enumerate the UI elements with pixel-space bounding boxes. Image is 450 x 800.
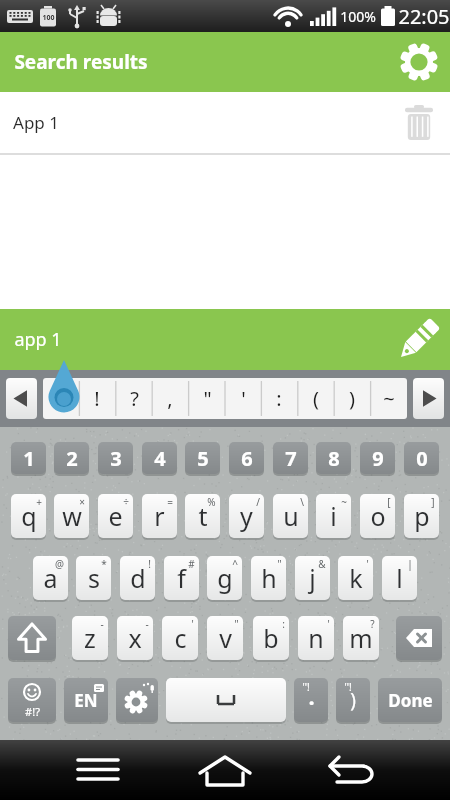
button[interactable]: p	[404, 494, 439, 538]
button[interactable]: f	[164, 556, 199, 600]
button[interactable]	[8, 616, 56, 660]
button[interactable]: r	[142, 494, 177, 538]
staticText: y	[240, 499, 253, 533]
button[interactable]	[413, 378, 444, 419]
button[interactable]: z	[72, 616, 108, 660]
button[interactable]: app 1	[0, 309, 450, 370]
button[interactable]: App 1	[0, 92, 450, 153]
staticText: ]	[431, 495, 435, 509]
button[interactable]: EN	[64, 678, 108, 722]
button[interactable]: t	[185, 494, 220, 538]
button[interactable]: ?	[116, 378, 152, 419]
button[interactable]: ~	[371, 378, 407, 419]
button[interactable]: l	[382, 556, 417, 600]
button[interactable]: o	[360, 494, 395, 538]
staticText: =	[167, 495, 173, 509]
button[interactable]: g	[207, 556, 242, 600]
button[interactable]: s	[76, 556, 111, 600]
staticText: '	[366, 557, 369, 571]
button[interactable]: q	[11, 494, 46, 538]
button[interactable]: 0	[404, 442, 439, 474]
staticText: [	[387, 495, 391, 509]
staticText: 7	[285, 445, 297, 472]
button[interactable]: ,	[152, 378, 188, 419]
staticText: ~	[341, 495, 347, 509]
staticText: Done	[388, 689, 433, 712]
button[interactable]: h	[251, 556, 286, 600]
staticText: !	[148, 557, 151, 571]
button[interactable]: x	[117, 616, 153, 660]
staticText: n	[308, 621, 324, 655]
button[interactable]	[63, 740, 133, 800]
staticText: g	[217, 561, 233, 595]
button[interactable]: k	[338, 556, 373, 600]
staticText: q	[21, 499, 37, 533]
staticText: j	[309, 561, 316, 595]
staticText: p	[414, 499, 430, 533]
staticText: '	[191, 617, 194, 631]
button[interactable]	[396, 616, 442, 660]
button[interactable]	[116, 678, 158, 722]
button[interactable]: !	[79, 378, 115, 419]
button[interactable]: c	[162, 616, 198, 660]
button[interactable]: Search results	[0, 32, 450, 92]
staticText: +	[36, 495, 42, 509]
button[interactable]: ''!	[294, 678, 328, 722]
staticText: 22:05	[398, 3, 450, 29]
button[interactable]: #!?	[8, 678, 56, 722]
staticText: EN	[74, 689, 98, 712]
button[interactable]: ''!	[336, 678, 370, 722]
button[interactable]: e	[98, 494, 133, 538]
button[interactable]: 3	[98, 442, 133, 474]
button[interactable]: 6	[229, 442, 264, 474]
button[interactable]	[317, 740, 387, 800]
button[interactable]: )	[334, 378, 370, 419]
button[interactable]	[6, 378, 37, 419]
staticText: %	[207, 495, 216, 509]
staticText: -	[145, 617, 149, 631]
button[interactable]: m	[343, 616, 379, 660]
button[interactable]: u	[273, 494, 308, 538]
button[interactable]: i	[316, 494, 351, 538]
button[interactable]	[190, 740, 260, 800]
staticText: ''!	[302, 680, 310, 694]
staticText: 5	[197, 445, 209, 472]
staticText: 8	[328, 445, 340, 472]
button[interactable]: 5	[185, 442, 220, 474]
button[interactable]: v	[207, 616, 243, 660]
staticText: App 1	[13, 111, 59, 134]
button[interactable]: 9	[360, 442, 395, 474]
button[interactable]: (	[298, 378, 334, 419]
staticText: \	[300, 495, 304, 509]
button[interactable]: 7	[273, 442, 308, 474]
staticText: f	[177, 561, 186, 595]
staticText: ÷	[123, 495, 129, 509]
button[interactable]: Done	[378, 678, 442, 722]
staticText: !	[94, 385, 100, 412]
staticText: u	[283, 499, 299, 533]
button[interactable]	[166, 678, 286, 722]
button[interactable]: 2	[54, 442, 89, 474]
staticText: @	[55, 557, 64, 571]
button[interactable]: 1	[11, 442, 46, 474]
staticText: l	[396, 561, 403, 595]
button[interactable]: w	[54, 494, 89, 538]
button[interactable]: "	[189, 378, 225, 419]
button[interactable]: j	[295, 556, 330, 600]
staticText: ?	[370, 617, 375, 631]
button[interactable]: n	[298, 616, 334, 660]
button[interactable]: y	[229, 494, 264, 538]
staticText: r	[154, 499, 165, 533]
button[interactable]: a	[33, 556, 68, 600]
button[interactable]: :	[261, 378, 297, 419]
staticText: 4	[154, 445, 166, 472]
button[interactable]: 8	[316, 442, 351, 474]
button[interactable]: '	[225, 378, 261, 419]
staticText: c	[174, 621, 187, 655]
button[interactable]: d	[120, 556, 155, 600]
staticText: e	[108, 499, 123, 533]
button[interactable]: b	[253, 616, 289, 660]
staticText: k	[349, 561, 363, 595]
staticText: b	[263, 621, 279, 655]
button[interactable]: 4	[142, 442, 177, 474]
